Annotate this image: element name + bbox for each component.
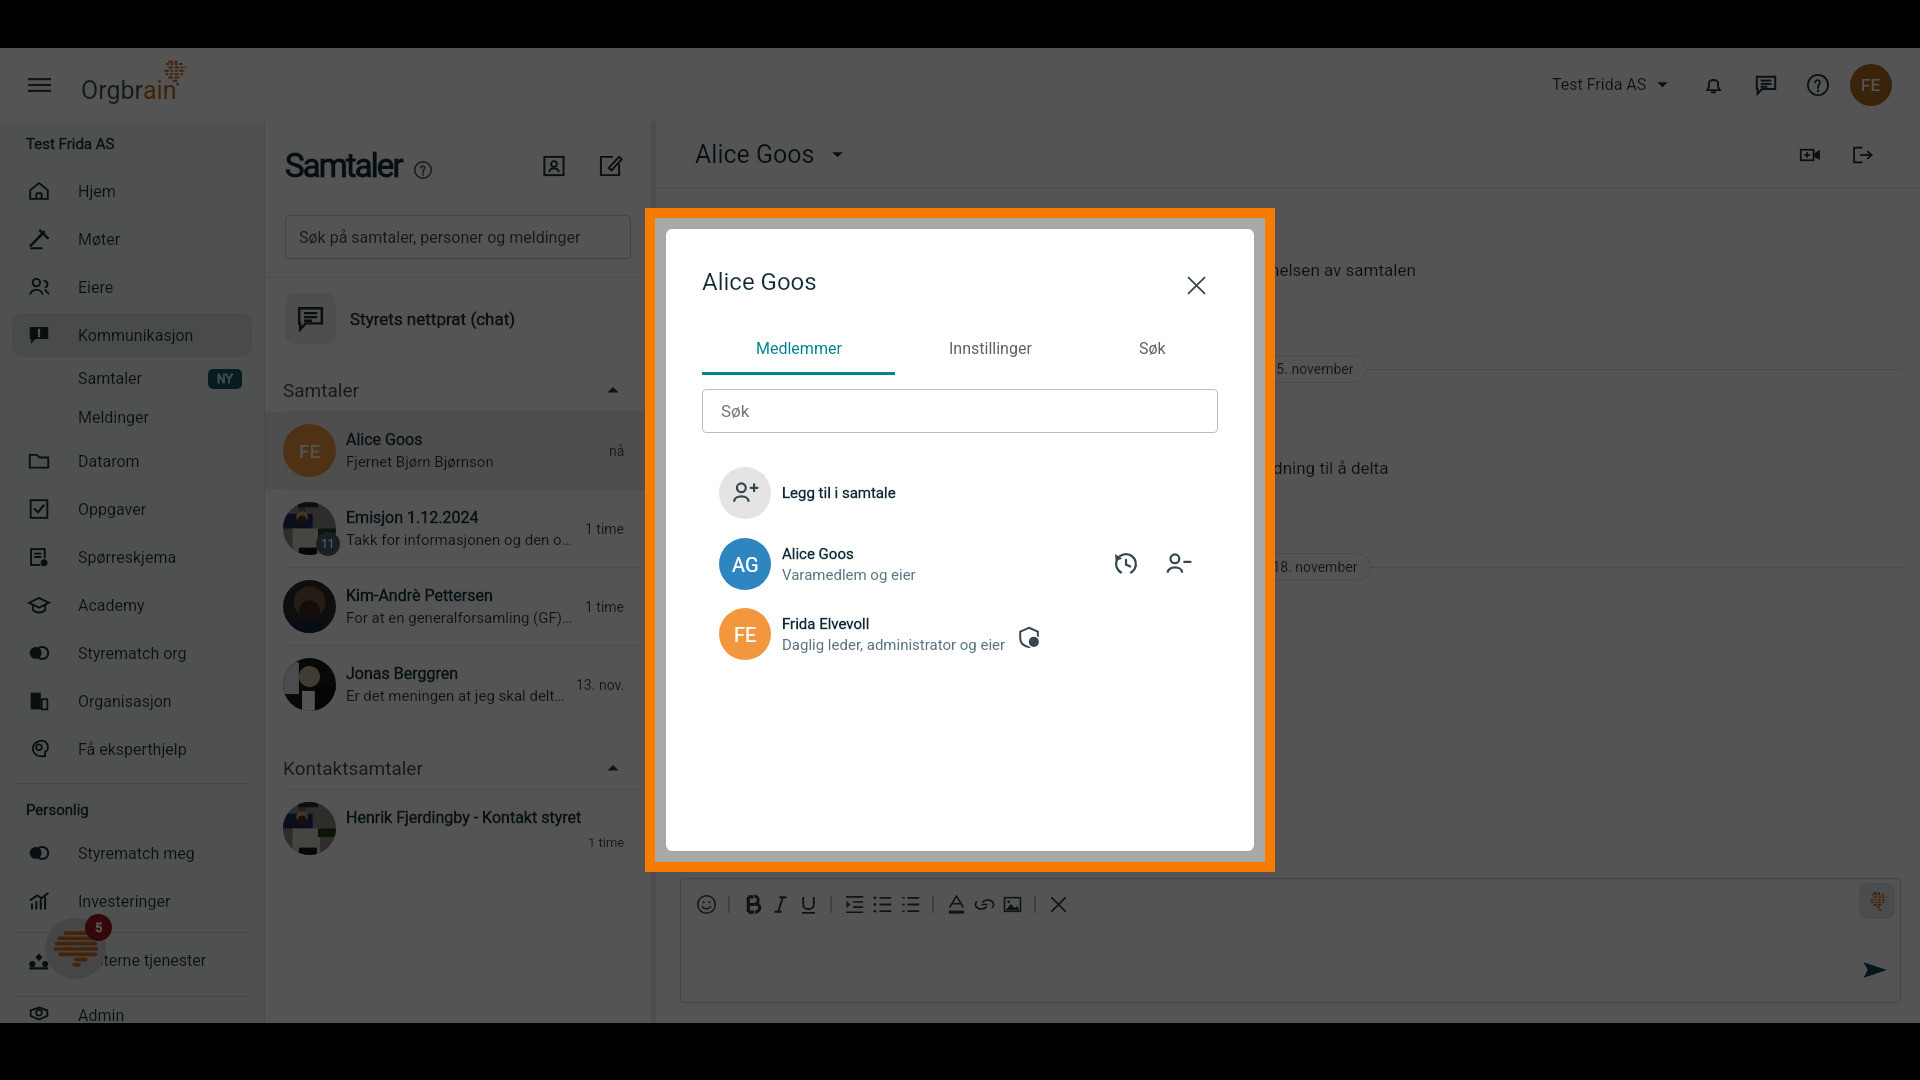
button[interactable]: Format tool	[692, 889, 720, 919]
staticText: Søk	[1139, 339, 1166, 358]
staticText: For at en generalforsamling (GF)…	[346, 609, 572, 627]
button[interactable]: Format tool	[738, 889, 766, 919]
staticText: Du har anledning til å delta	[1188, 458, 1389, 478]
staticText: Møter	[78, 230, 121, 249]
staticText: Samtaler	[283, 379, 359, 401]
button[interactable]: Start video call	[1794, 139, 1826, 171]
staticText: Styrematch org	[78, 644, 187, 663]
button[interactable]: Styrets nettprat (chat)	[265, 278, 651, 359]
button[interactable]: History	[1108, 546, 1144, 582]
staticText: Alice Goos	[702, 268, 817, 296]
staticText: Innstillinger	[949, 339, 1032, 358]
button[interactable]: Hjem	[12, 169, 252, 213]
staticText: 11	[321, 537, 335, 551]
button[interactable]: Søk	[702, 389, 1218, 433]
staticText: Alice Goos	[695, 140, 815, 169]
button[interactable]: Samtaler	[0, 359, 264, 398]
staticText: 1 time	[588, 835, 625, 850]
button[interactable]: Messages	[1748, 67, 1784, 103]
button[interactable]: Academy	[12, 583, 252, 627]
staticText: Dette er begynnelsen av samtalen	[1161, 260, 1416, 280]
button[interactable]: Få eksperthjelp	[12, 727, 252, 771]
button[interactable]: Styrematch org	[12, 631, 252, 675]
button[interactable]: Søk på samtaler, personer og meldinger	[285, 215, 631, 259]
button[interactable]: FE	[265, 412, 651, 489]
button[interactable]: Organisasjon	[12, 679, 252, 723]
staticText: Spørreskjema	[78, 548, 177, 567]
button[interactable]: Jonas Berggren	[265, 646, 651, 723]
button[interactable]: Oppgaver	[12, 487, 252, 531]
staticText: Søk på samtaler, personer og meldinger	[299, 228, 581, 247]
button[interactable]: Kim-Andrè Pettersen	[265, 568, 651, 645]
button[interactable]: Format tool	[896, 889, 924, 919]
button[interactable]: Notifications	[1695, 67, 1731, 103]
button[interactable]: Format tool	[942, 889, 970, 919]
button[interactable]: Format tool	[794, 889, 822, 919]
staticText: Varamedlem og eier	[782, 566, 916, 584]
staticText: Styrets nettprat (chat)	[350, 309, 516, 329]
button[interactable]: Contacts	[537, 149, 571, 183]
staticText: Kontaktsamtaler	[283, 757, 423, 779]
button[interactable]: AG	[666, 538, 1254, 590]
button[interactable]: Spørreskjema	[12, 535, 252, 579]
button[interactable]: 11	[265, 490, 651, 567]
button[interactable]: Henrik Fjerdingby - Kontakt styret	[265, 790, 651, 867]
button[interactable]: Format tool	[998, 889, 1026, 919]
staticText: 1 time	[585, 521, 625, 537]
button[interactable]: Leave conversation	[1846, 139, 1878, 171]
staticText: Hjem	[78, 182, 116, 201]
button[interactable]: Format tool	[1044, 889, 1072, 919]
button[interactable]: Innstillinger	[895, 325, 1085, 375]
staticText: 13. nov.	[576, 677, 625, 693]
staticText: Samtaler	[78, 369, 142, 388]
staticText: Er det meningen at jeg skal delt…	[346, 687, 565, 705]
button[interactable]: FE	[1850, 64, 1892, 106]
staticText: Meldinger	[78, 408, 149, 427]
button[interactable]: Investeringer	[12, 879, 252, 923]
button[interactable]: Eksterne tjenester	[12, 938, 252, 982]
staticText: Organisasjon	[78, 692, 172, 711]
button[interactable]: Møter	[12, 217, 252, 261]
button[interactable]: Datarom	[12, 439, 252, 483]
button[interactable]: Close	[1176, 265, 1216, 305]
staticText: Fjernet Bjørn Bjørnson	[346, 453, 494, 471]
button[interactable]: Kontaktsamtaler	[265, 746, 651, 789]
staticText: Jonas Berggren	[346, 664, 459, 683]
button[interactable]: Format tool	[840, 889, 868, 919]
staticText: Test Frida AS	[26, 135, 115, 153]
button[interactable]: Help	[1800, 67, 1836, 103]
button[interactable]: Admin	[12, 1006, 252, 1021]
staticText: Kommunikasjon	[78, 326, 194, 345]
button[interactable]: Eiere	[12, 265, 252, 309]
staticText: AG	[732, 553, 759, 576]
button[interactable]: FE	[666, 608, 1254, 660]
staticText: Få eksperthjelp	[78, 740, 187, 759]
staticText: Datarom	[78, 452, 140, 471]
button[interactable]: Remove member	[1160, 546, 1196, 582]
button[interactable]: Format tool	[868, 889, 896, 919]
button[interactable]: New conversation	[593, 149, 627, 183]
staticText: FE	[734, 623, 757, 646]
button[interactable]: Legg til i samtale	[666, 467, 1254, 519]
button[interactable]: Format tool	[766, 889, 794, 919]
staticText: NY	[217, 372, 233, 386]
button[interactable]: Søk	[1085, 325, 1219, 375]
staticText: Orgbr	[81, 76, 143, 105]
button[interactable]: Orgbrain assistant	[45, 918, 106, 979]
button[interactable]: Meldinger	[0, 398, 264, 437]
button[interactable]: Menu	[19, 65, 59, 105]
staticText: FE	[299, 440, 321, 462]
staticText: Test Frida AS	[1552, 75, 1647, 94]
staticText: Personlig	[26, 801, 89, 819]
button[interactable]: Kommunikasjon	[12, 313, 252, 357]
button[interactable]: Medlemmer	[702, 325, 895, 375]
button[interactable]: Orgbrain assistant	[1859, 883, 1895, 919]
button[interactable]: Send	[1858, 953, 1892, 987]
staticText: 5	[95, 920, 103, 935]
staticText: Admin	[78, 1006, 125, 1021]
staticText: mandag 18. november	[1218, 559, 1358, 575]
button[interactable]: Styrematch meg	[12, 831, 252, 875]
staticText: nå	[609, 443, 625, 459]
button[interactable]: Samtaler	[265, 368, 651, 411]
button[interactable]: Format tool	[970, 889, 998, 919]
